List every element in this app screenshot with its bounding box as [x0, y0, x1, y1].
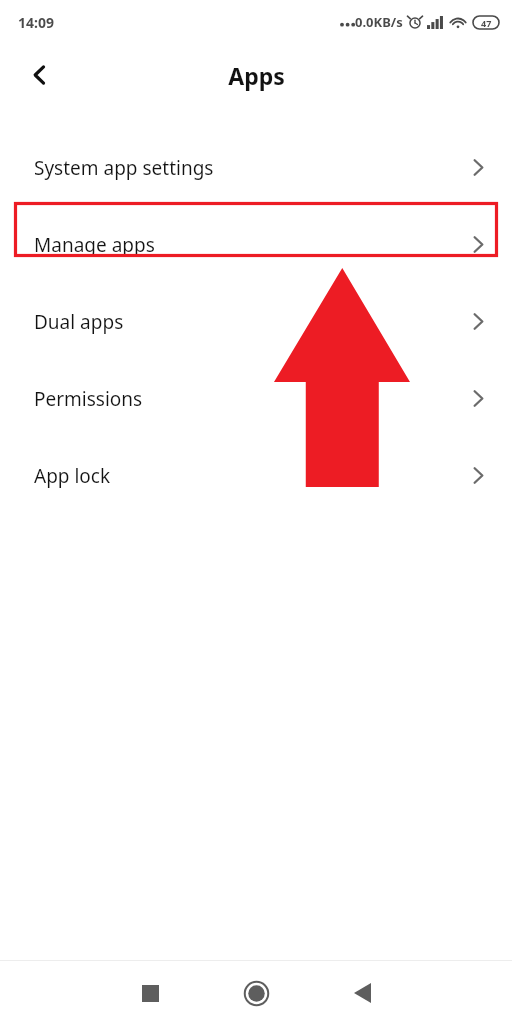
button[interactable]: Permissions	[0, 360, 512, 437]
staticText: Apps	[228, 60, 285, 91]
button[interactable]: Home	[228, 965, 284, 1021]
staticText: System app settings	[34, 155, 214, 181]
button[interactable]: Manage apps	[0, 206, 512, 283]
button[interactable]: System app settings	[0, 129, 512, 206]
staticText: 0.0KB/s	[355, 13, 403, 31]
button[interactable]: Back	[334, 965, 390, 1021]
staticText: Permissions	[34, 386, 143, 412]
button[interactable]: Recent apps	[122, 965, 178, 1021]
staticText: App lock	[34, 463, 111, 489]
button[interactable]: Dual apps	[0, 283, 512, 360]
staticText: 14:09	[18, 13, 54, 32]
staticText: 47	[481, 17, 492, 29]
staticText: Dual apps	[34, 309, 124, 335]
button[interactable]: Back	[16, 51, 64, 99]
staticText: Manage apps	[34, 232, 155, 258]
button[interactable]: App lock	[0, 437, 512, 514]
